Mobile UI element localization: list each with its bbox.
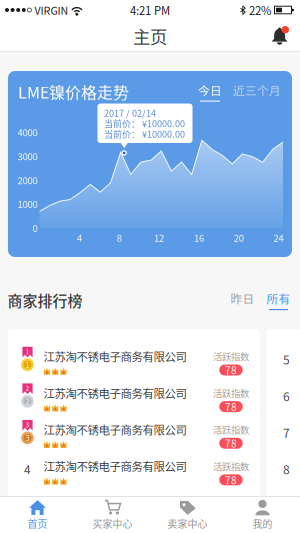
staticText: 0 (33, 221, 38, 235)
staticText: 3 (25, 420, 29, 429)
staticText: 近三个月 (233, 82, 281, 99)
staticText: 江苏淘不锈电子商务有限公司 (43, 421, 186, 438)
button[interactable]: 5 (8, 487, 259, 524)
staticText: 8 (117, 230, 122, 244)
staticText: 78 (225, 473, 237, 487)
staticText: 20 (234, 230, 244, 244)
staticText: 活跃指数 (213, 349, 249, 363)
button[interactable]: 通知 (266, 22, 294, 50)
staticText: 活跃指数 (213, 459, 249, 473)
staticText: 首页 (27, 516, 47, 531)
staticText: 5 (283, 351, 290, 368)
staticText: 24 (273, 230, 283, 244)
button[interactable]: 卖家中心 (150, 499, 225, 531)
button[interactable]: 5 (267, 341, 300, 378)
staticText: 昨日 (230, 290, 254, 307)
staticText: 活跃指数 (213, 496, 249, 509)
staticText: 所有 (266, 290, 290, 307)
button[interactable]: 所有 (254, 290, 290, 310)
staticText: 12 (154, 230, 164, 244)
staticText: 江苏淘不锈电子商务有限公司 (43, 494, 186, 511)
staticText: 今日 (198, 82, 222, 99)
button[interactable]: 3 (8, 414, 259, 451)
staticText: 4 (24, 460, 31, 478)
staticText: LME镍价格走势 (18, 80, 129, 103)
staticText: 江苏淘不锈电子商务有限公司 (43, 458, 186, 474)
staticText: 2 (25, 396, 29, 407)
staticText: 16 (194, 230, 204, 244)
staticText: 3000 (18, 149, 38, 163)
staticText: 6 (283, 387, 290, 405)
staticText: 江苏淘不锈电子商务有限公司 (43, 385, 186, 401)
staticText: 活跃指数 (213, 423, 249, 436)
staticText: 商家排行榜 (7, 289, 82, 311)
staticText: 江苏淘不锈电子商务有限公司 (43, 348, 186, 365)
staticText: 2000 (18, 173, 38, 187)
staticText: 4:21 PM (130, 2, 170, 18)
staticText: 1 (25, 346, 29, 356)
staticText: 4000 (18, 125, 38, 139)
staticText: 4 (77, 230, 82, 244)
button[interactable]: 近三个月 (222, 82, 281, 102)
button[interactable]: 4 (8, 451, 259, 487)
staticText: 2017 / 02/14 (104, 106, 156, 119)
staticText: 8 (283, 460, 290, 478)
button[interactable]: 昨日 (230, 290, 254, 310)
staticText: 1 (25, 359, 29, 370)
staticText: 5 (24, 497, 31, 514)
staticText: 1000 (18, 197, 38, 211)
staticText: 当前价： ¥10000.00 (104, 127, 185, 140)
button[interactable]: 9 (267, 487, 300, 524)
button[interactable]: 买家中心 (75, 499, 150, 531)
staticText: 我的 (252, 516, 272, 531)
button[interactable]: 今日 (198, 82, 222, 102)
button[interactable]: 8 (267, 451, 300, 487)
staticText: 2 (25, 383, 29, 393)
staticText: 7 (283, 424, 290, 441)
button[interactable]: 我的 (225, 499, 300, 531)
staticText: VIRGIN (34, 2, 68, 18)
staticText: 当前价： ¥10000.00 (104, 117, 185, 130)
staticText: 78 (225, 363, 237, 377)
button[interactable]: 6 (267, 378, 300, 414)
staticText: 78 (225, 436, 237, 450)
staticText: 活跃指数 (213, 386, 249, 400)
staticText: 78 (225, 399, 237, 414)
staticText: 卖家中心 (167, 516, 207, 531)
staticText: 买家中心 (92, 516, 132, 531)
staticText: 主页 (133, 23, 167, 49)
button[interactable]: 首页 (0, 499, 75, 531)
staticText: 22% (249, 2, 271, 18)
button[interactable]: 2 (8, 378, 259, 414)
button[interactable]: 7 (267, 414, 300, 451)
button[interactable]: 1 (8, 341, 259, 378)
staticText: 3 (25, 433, 29, 443)
